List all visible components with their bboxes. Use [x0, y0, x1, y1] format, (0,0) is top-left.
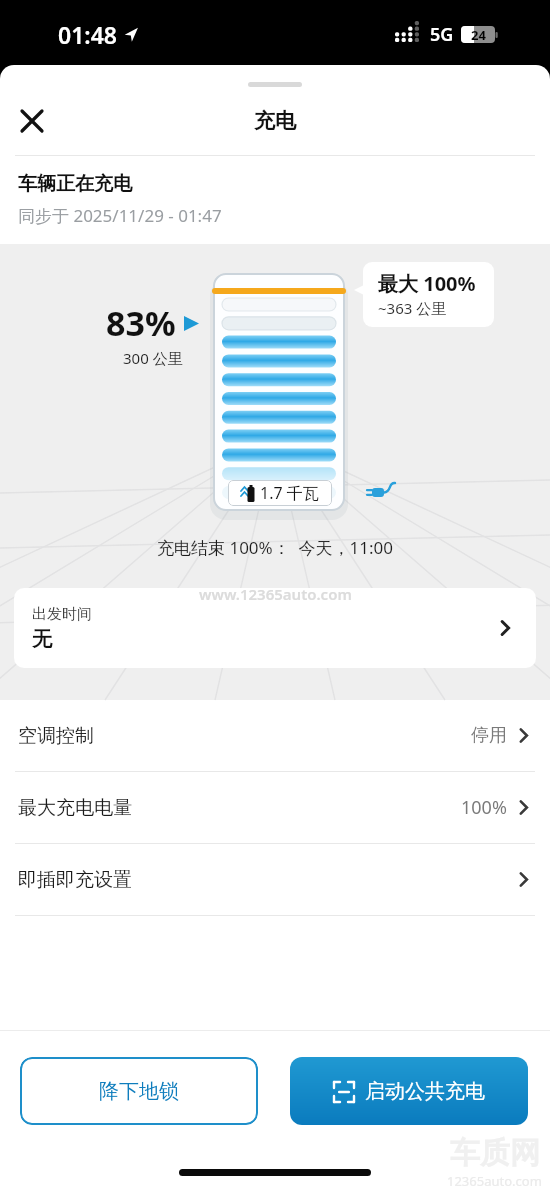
button[interactable]: 出发时间 [14, 588, 536, 668]
staticText: 降下地锁 [99, 1079, 179, 1104]
staticText: 83% [106, 300, 176, 346]
staticText: 空调控制 [18, 724, 94, 748]
button[interactable] [12, 101, 52, 141]
staticText: 车辆正在充电 [18, 172, 132, 196]
staticText: 5G [430, 22, 454, 47]
staticText: 最大 100% [378, 270, 476, 297]
button[interactable]: 降下地锁 [20, 1057, 258, 1125]
button[interactable]: 最大充电电量 [0, 772, 550, 843]
staticText: 出发时间 [32, 605, 92, 624]
staticText: 同步于 2025/11/29 - 01:47 [18, 204, 222, 227]
staticText: ~363 公里 [378, 298, 447, 318]
staticText: 最大充电电量 [18, 796, 132, 820]
staticText: 300 公里 [123, 348, 183, 368]
staticText: 无 [32, 627, 52, 652]
staticText: 1.7 千瓦 [260, 482, 319, 504]
button[interactable]: 空调控制 [0, 700, 550, 771]
staticText: 01:48 [58, 19, 117, 50]
staticText: 12365auto.com [447, 1172, 542, 1190]
staticText: 24 [471, 26, 486, 43]
staticText: 启动公共充电 [365, 1079, 485, 1104]
staticText: 车质网 [450, 1134, 540, 1172]
staticText: www.12365auto.com [199, 584, 352, 604]
staticText: 100% [461, 795, 507, 820]
button[interactable]: 启动公共充电 [290, 1057, 528, 1125]
staticText: 充电 [254, 108, 296, 134]
staticText: 即插即充设置 [18, 868, 132, 892]
staticText: 停用 [471, 724, 507, 747]
staticText: 充电结束 100%： 今天，11:00 [157, 536, 394, 559]
button[interactable]: 即插即充设置 [0, 844, 550, 915]
